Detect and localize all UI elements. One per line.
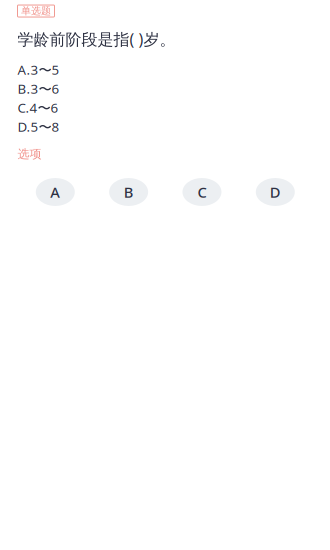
staticText: B.3〜6 — [17, 80, 59, 97]
staticText: C.4〜6 — [17, 99, 58, 116]
button[interactable]: A — [36, 178, 75, 206]
button[interactable]: C — [182, 178, 221, 206]
staticText: D — [270, 182, 281, 202]
staticText: C — [197, 182, 206, 202]
staticText: 选项 — [17, 147, 41, 161]
staticText: 单选题 — [21, 5, 51, 17]
staticText: A — [50, 182, 60, 202]
staticText: 学龄前阶段是指( )岁。 — [17, 28, 175, 50]
button[interactable]: B — [109, 178, 148, 206]
staticText: A.3〜5 — [17, 61, 59, 78]
button[interactable]: D — [256, 178, 295, 206]
staticText: D.5〜8 — [17, 118, 59, 135]
staticText: B — [124, 182, 134, 202]
